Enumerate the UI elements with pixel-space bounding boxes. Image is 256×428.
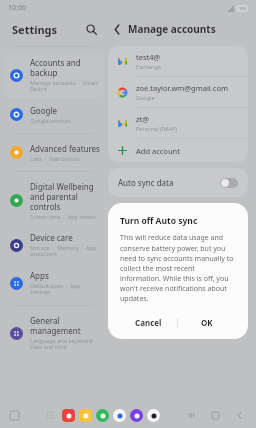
staticText: Advanced features xyxy=(30,143,100,154)
staticText: Auto sync data xyxy=(118,177,174,188)
button[interactable]: App xyxy=(62,409,75,422)
button[interactable]: Google xyxy=(4,100,104,129)
button[interactable]: All apps xyxy=(43,408,57,422)
staticText: Default apps · App settings xyxy=(30,282,100,296)
staticText: Exchange xyxy=(136,63,161,70)
button[interactable]: zt@ xyxy=(108,108,248,138)
staticText: zt@ xyxy=(136,114,149,124)
staticText: Accounts and backup xyxy=(30,57,100,78)
button[interactable]: test4@ xyxy=(108,46,248,76)
button[interactable]: Recents xyxy=(184,408,198,422)
staticText: 100 xyxy=(239,6,246,11)
button[interactable]: Accounts and backup xyxy=(4,52,104,98)
staticText: Manage accounts · Smart Switch xyxy=(30,79,100,93)
staticText: Language and keyboard · Date and time xyxy=(30,337,100,351)
staticText: Storage · Memory · App protection xyxy=(30,244,100,258)
button[interactable]: Home xyxy=(208,408,222,422)
button[interactable]: Search xyxy=(82,20,100,38)
button[interactable]: Back xyxy=(232,408,246,422)
staticText: General management xyxy=(30,315,100,336)
button[interactable]: App xyxy=(113,409,126,422)
button[interactable]: General management xyxy=(4,310,104,356)
staticText: Manage accounts xyxy=(128,22,216,36)
button[interactable]: OK xyxy=(178,312,236,333)
staticText: Screen time · App timers xyxy=(30,213,96,220)
button[interactable]: Add account xyxy=(108,139,248,162)
button[interactable]: App xyxy=(79,409,92,422)
staticText: Cancel xyxy=(135,317,162,328)
staticText: Apps xyxy=(30,270,49,281)
staticText: Settings xyxy=(12,22,58,37)
staticText: Google services xyxy=(30,117,71,124)
button[interactable]: zoe.taylor.wm@gmail.com xyxy=(108,77,248,107)
staticText: Turn off Auto sync xyxy=(120,215,198,227)
staticText: zoe.taylor.wm@gmail.com xyxy=(136,83,228,93)
button[interactable]: App xyxy=(130,409,143,422)
staticText: Google xyxy=(136,94,155,101)
button[interactable]: Recent app xyxy=(8,409,20,421)
staticText: Google xyxy=(30,105,57,116)
staticText: Labs · Side button xyxy=(30,155,80,162)
staticText: Personal (IMAP) xyxy=(136,125,177,132)
button[interactable]: Back xyxy=(108,20,126,38)
button[interactable]: Advanced features xyxy=(4,138,104,167)
button[interactable]: Cancel xyxy=(120,312,177,333)
staticText: OK xyxy=(201,317,213,328)
button[interactable]: Digital Wellbeing and parental controls xyxy=(4,176,104,225)
staticText: This will reduce data usage and conserve… xyxy=(120,233,236,303)
button[interactable]: Apps xyxy=(4,265,104,301)
staticText: 10:00 xyxy=(8,3,26,13)
staticText: Add account xyxy=(136,146,180,156)
staticText: Device care xyxy=(30,232,73,243)
button[interactable]: Device care xyxy=(4,227,104,263)
button[interactable]: Auto sync data xyxy=(108,168,248,197)
staticText: test4@ xyxy=(136,52,161,62)
staticText: Digital Wellbeing and parental controls xyxy=(30,181,100,212)
button[interactable]: App xyxy=(147,409,160,422)
button[interactable]: App xyxy=(96,409,109,422)
